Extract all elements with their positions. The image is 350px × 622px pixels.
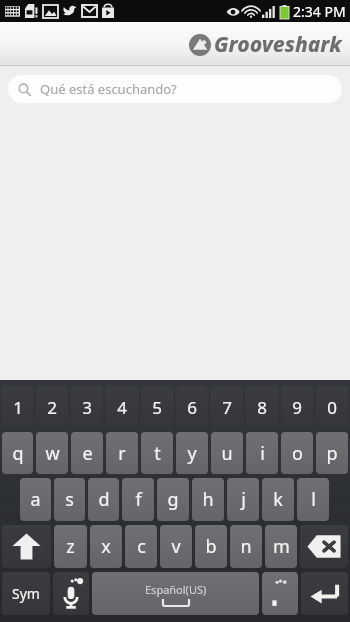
- staticText: 2:34 PM: [293, 2, 346, 21]
- staticText: 7: [222, 396, 232, 419]
- button[interactable]: Backspace: [300, 525, 348, 568]
- staticText: h: [202, 487, 214, 512]
- button[interactable]: 1: [2, 386, 33, 428]
- button[interactable]: 7: [211, 386, 243, 428]
- staticText: l: [311, 487, 316, 512]
- button[interactable]: 6: [176, 386, 208, 428]
- button[interactable]: Grooveshark: [189, 30, 342, 59]
- staticText: 0: [327, 396, 337, 419]
- staticText: f: [135, 487, 142, 512]
- button[interactable]: 5: [141, 386, 173, 428]
- other: Grooveshark: [189, 34, 211, 56]
- button[interactable]: t: [141, 432, 173, 474]
- staticText: 6: [187, 396, 197, 419]
- staticText: k: [273, 487, 283, 512]
- staticText: i: [260, 441, 265, 466]
- button[interactable]: r: [106, 432, 138, 474]
- button[interactable]: n: [230, 525, 262, 568]
- staticText: n: [240, 534, 252, 559]
- staticText: z: [66, 534, 75, 559]
- staticText: v: [171, 534, 181, 559]
- button[interactable]: j: [227, 478, 259, 521]
- button[interactable]: p: [316, 432, 348, 474]
- staticText: b: [205, 534, 217, 559]
- button[interactable]: z: [54, 525, 87, 568]
- button[interactable]: b: [195, 525, 227, 568]
- staticText: Sym: [12, 584, 40, 603]
- button[interactable]: k: [262, 478, 294, 521]
- staticText: r: [118, 441, 126, 466]
- staticText: d: [98, 487, 110, 512]
- button[interactable]: 4: [106, 386, 138, 428]
- button[interactable]: a: [20, 478, 51, 521]
- staticText: 2: [47, 396, 57, 419]
- staticText: 9: [292, 396, 302, 419]
- staticText: p: [326, 441, 338, 466]
- button[interactable]: Sym: [2, 572, 50, 615]
- button[interactable]: m: [265, 525, 297, 568]
- button[interactable]: l: [297, 478, 329, 521]
- button[interactable]: i: [246, 432, 278, 474]
- button[interactable]: w: [36, 432, 68, 474]
- button[interactable]: v: [160, 525, 192, 568]
- button[interactable]: 2: [36, 386, 68, 428]
- button[interactable]: Enter: [301, 572, 348, 615]
- staticText: q: [12, 441, 24, 466]
- button[interactable]: f: [122, 478, 154, 521]
- staticText: u: [221, 441, 233, 466]
- staticText: c: [137, 534, 146, 559]
- staticText: 5: [152, 396, 162, 419]
- button[interactable]: Qué está escuchando?: [8, 75, 342, 103]
- staticText: o: [292, 441, 303, 466]
- button[interactable]: 9: [281, 386, 313, 428]
- staticText: 8: [257, 396, 267, 419]
- staticText: 4: [117, 396, 127, 419]
- button[interactable]: e: [71, 432, 103, 474]
- button[interactable]: d: [88, 478, 119, 521]
- staticText: y: [187, 441, 197, 466]
- button[interactable]: y: [176, 432, 208, 474]
- button[interactable]: Voice input: [53, 572, 89, 615]
- button[interactable]: h: [192, 478, 224, 521]
- staticText: t: [154, 441, 161, 466]
- button[interactable]: Space: [92, 572, 259, 615]
- button[interactable]: Period: [262, 572, 298, 615]
- staticText: Grooveshark: [214, 30, 342, 59]
- button[interactable]: Shift: [2, 525, 51, 568]
- button[interactable]: q: [2, 432, 33, 474]
- staticText: s: [65, 487, 74, 512]
- staticText: Qué está escuchando?: [40, 80, 177, 98]
- button[interactable]: 3: [71, 386, 103, 428]
- button[interactable]: x: [90, 525, 122, 568]
- staticText: j: [241, 487, 246, 512]
- staticText: g: [167, 487, 179, 512]
- staticText: w: [45, 441, 60, 466]
- button[interactable]: 0: [316, 386, 348, 428]
- staticText: m: [273, 534, 290, 559]
- staticText: 3: [82, 396, 92, 419]
- button[interactable]: c: [125, 525, 157, 568]
- button[interactable]: 8: [246, 386, 278, 428]
- staticText: a: [30, 487, 41, 512]
- staticText: x: [101, 534, 111, 559]
- button[interactable]: u: [211, 432, 243, 474]
- staticText: e: [82, 441, 93, 466]
- staticText: 1: [13, 396, 23, 419]
- button[interactable]: s: [54, 478, 85, 521]
- button[interactable]: o: [281, 432, 313, 474]
- staticText: Español(US): [145, 582, 207, 597]
- button[interactable]: g: [157, 478, 189, 521]
